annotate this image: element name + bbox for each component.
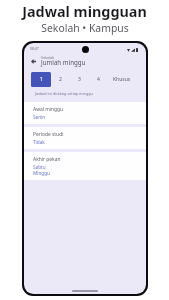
staticText: 1 xyxy=(40,76,43,83)
button[interactable]: 3 xyxy=(70,72,89,87)
staticText: Sekolah xyxy=(41,55,55,60)
button[interactable]: 2 xyxy=(51,72,70,87)
staticText: Minggu xyxy=(33,170,51,176)
staticText: Sabtu xyxy=(33,164,46,170)
staticText: Khusus xyxy=(113,76,131,83)
staticText: Jumlah minggu xyxy=(41,58,86,66)
staticText: Akhir pekan xyxy=(33,156,61,163)
button[interactable]: Khusus xyxy=(108,72,135,87)
button[interactable]: Back xyxy=(28,56,39,67)
button[interactable]: Awal minggu xyxy=(24,102,146,124)
staticText: Awal minggu xyxy=(33,106,64,113)
button[interactable]: Periode studi xyxy=(24,127,146,149)
staticText: 2 xyxy=(59,76,62,83)
staticText: Periode studi xyxy=(33,131,64,138)
button[interactable]: Akhir pekan xyxy=(24,152,146,180)
staticText: Sekolah • Kampus xyxy=(41,21,129,35)
staticText: Jadwal ini diulang setiap minggu xyxy=(35,91,93,96)
staticText: 08:47 xyxy=(30,46,39,51)
staticText: Tidak xyxy=(33,139,45,145)
button[interactable]: 1 xyxy=(31,72,51,87)
staticText: 3 xyxy=(78,76,81,83)
button[interactable]: 4 xyxy=(89,72,108,87)
staticText: Jadwal mingguan xyxy=(22,2,147,22)
staticText: Senin xyxy=(33,114,46,120)
staticText: 4 xyxy=(97,76,100,83)
